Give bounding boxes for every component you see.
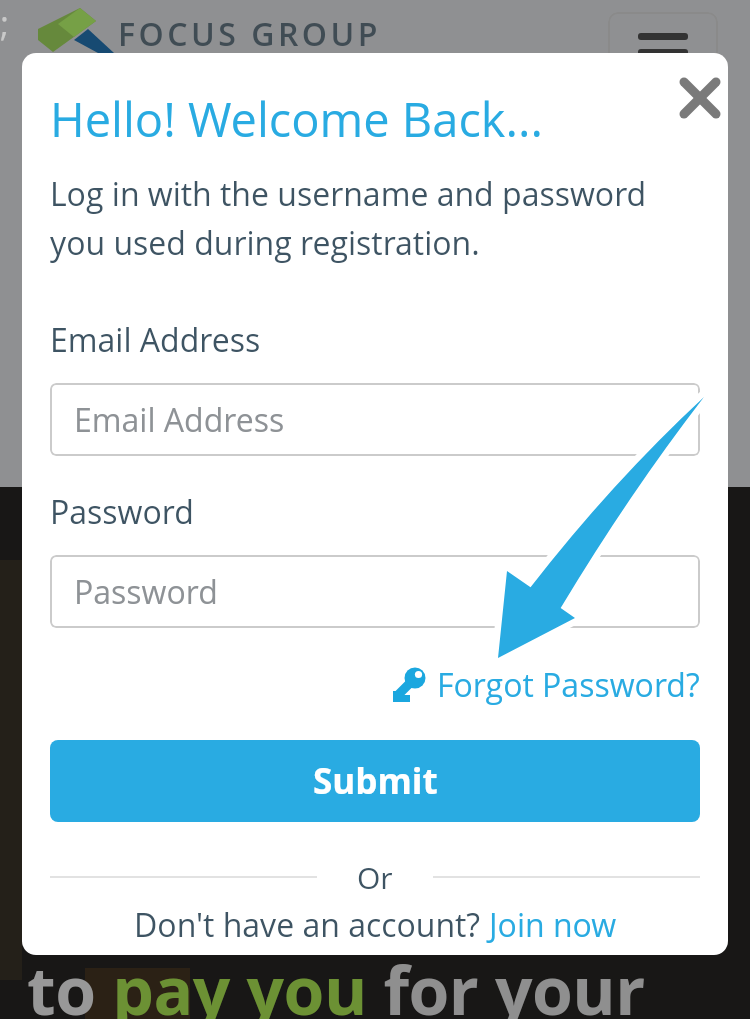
staticText: Log in with the username and password yo… bbox=[50, 172, 647, 264]
button[interactable]: Join now bbox=[489, 903, 617, 947]
staticText: ; bbox=[0, 0, 10, 46]
staticText: Submit bbox=[313, 757, 438, 805]
staticText: Password bbox=[74, 570, 218, 614]
button[interactable] bbox=[674, 72, 726, 124]
staticText: Email Address bbox=[74, 398, 285, 442]
staticText: Forgot Password? bbox=[437, 663, 700, 705]
button[interactable]: Email Address bbox=[50, 383, 700, 456]
staticText: Or bbox=[357, 857, 393, 898]
button[interactable]: Password bbox=[50, 555, 700, 628]
staticText: to pay you for your bbox=[27, 944, 645, 1019]
staticText: Hello! Welcome Back... bbox=[50, 87, 544, 151]
button[interactable] bbox=[608, 12, 718, 82]
staticText: Don't have an account? bbox=[134, 903, 489, 947]
staticText: Password bbox=[50, 490, 194, 534]
staticText: Email Address bbox=[50, 318, 261, 362]
button[interactable]: Forgot Password? bbox=[50, 663, 700, 705]
button[interactable]: Submit bbox=[50, 740, 700, 822]
staticText: FOCUS GROUP bbox=[118, 12, 381, 56]
